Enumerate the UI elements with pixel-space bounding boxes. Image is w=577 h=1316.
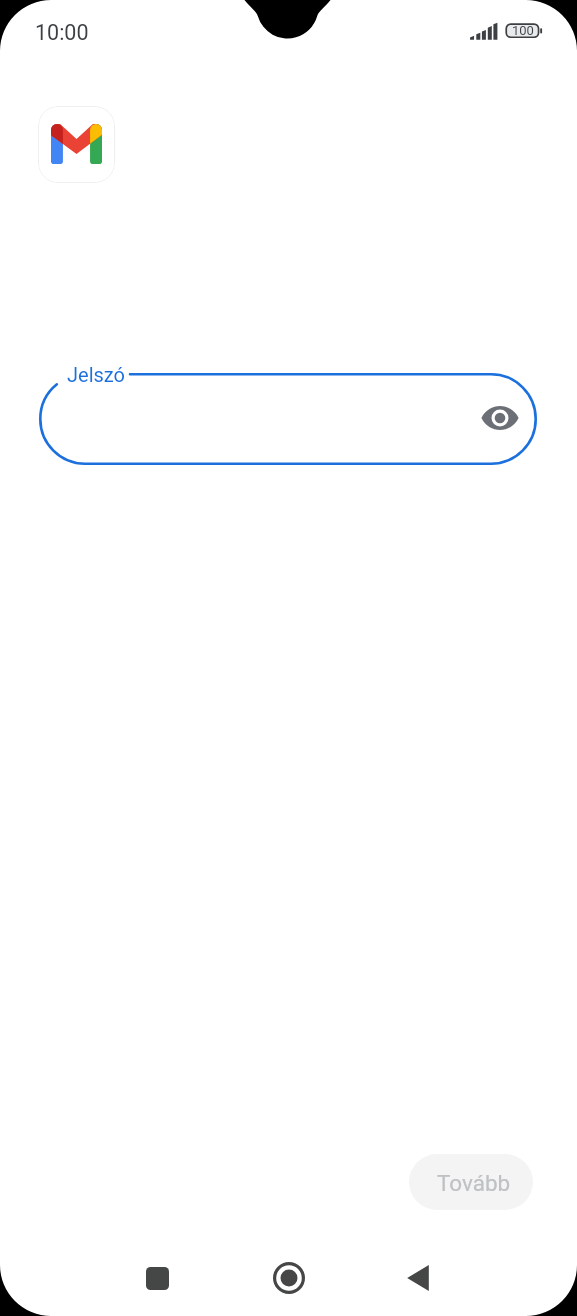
staticText: 100 [512, 23, 534, 38]
button[interactable]: Home [266, 1255, 312, 1301]
button[interactable]: Back [395, 1255, 441, 1301]
staticText: Jelszó [67, 363, 125, 386]
button[interactable]: Jelszo megjelenitese [478, 396, 522, 440]
staticText: 10:00 [35, 20, 89, 45]
button[interactable]: Recent apps [134, 1255, 180, 1301]
button[interactable]: Jelszó [39, 373, 537, 465]
staticText: Tovább [437, 1170, 511, 1196]
button[interactable]: Tovább [409, 1154, 533, 1210]
